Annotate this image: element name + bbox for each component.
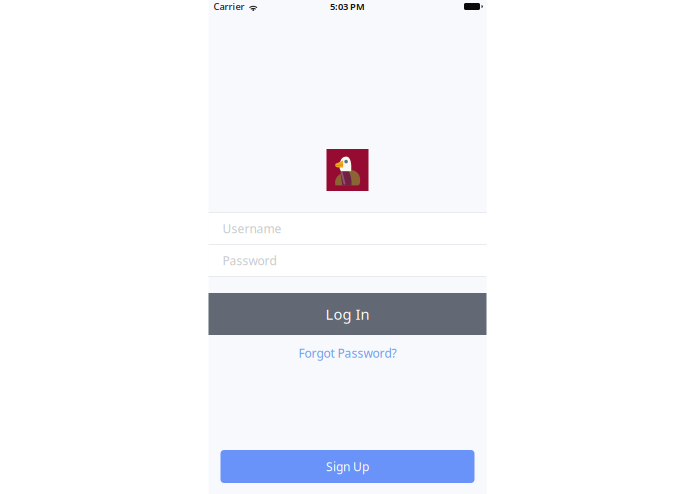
staticText: Sign Up [326, 458, 369, 474]
button[interactable]: Password [208, 245, 486, 277]
button[interactable]: Username [208, 213, 486, 245]
staticText: Carrier [213, 0, 244, 13]
staticText: Log In [325, 304, 369, 324]
staticText: 5:03 PM [330, 0, 365, 13]
button[interactable]: Sign Up [220, 450, 474, 483]
button[interactable]: Forgot Password? [208, 342, 486, 364]
staticText: Username [222, 220, 281, 236]
staticText: Password [222, 252, 276, 268]
staticText: Forgot Password? [298, 345, 396, 361]
button[interactable]: Log In [208, 293, 486, 335]
